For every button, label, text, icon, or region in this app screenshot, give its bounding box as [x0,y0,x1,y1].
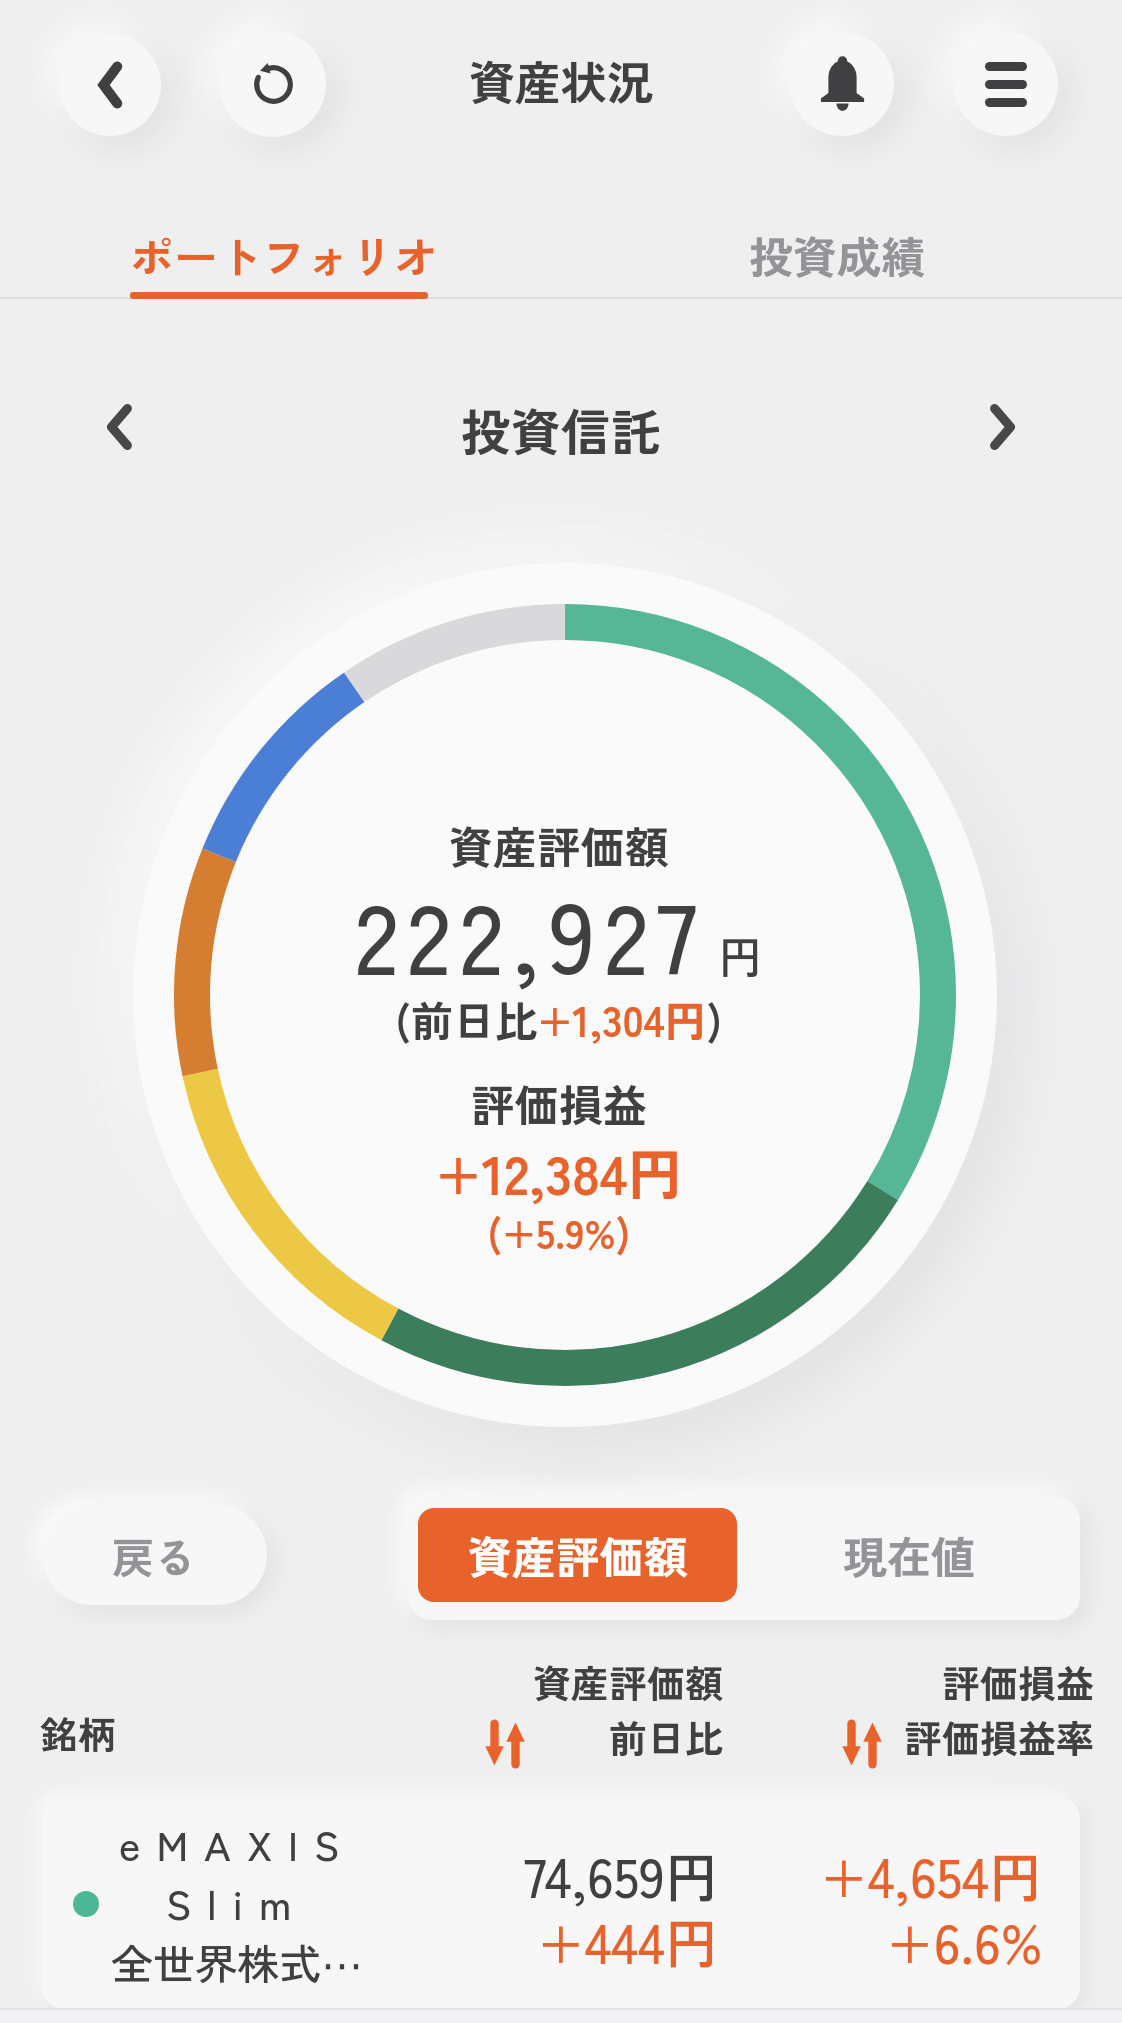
button[interactable] [59,34,161,136]
button[interactable]: ポートフォリオ [130,223,438,287]
button[interactable]: eMAXIS [42,1797,1080,2009]
staticText: 前日比 [609,1709,724,1764]
staticText: +444円 [537,1901,719,1979]
staticText: +12,384円 [435,1131,683,1211]
button[interactable] [220,31,326,137]
staticText: 評価損益 [942,1654,1095,1709]
staticText: 資産評価額 [449,813,669,873]
staticText: ポートフォリオ [130,223,438,287]
staticText: 評価損益 [471,1071,647,1131]
staticText: 222,927 円 [355,861,763,1001]
staticText: 現在値 [843,1523,975,1587]
button[interactable]: 投資成績 [749,223,925,287]
staticText: 評価損益率 [904,1709,1095,1764]
staticText: 74,659円 [524,1835,719,1913]
staticText: 資産状況 [469,47,653,113]
staticText: 資産評価額 [533,1654,724,1709]
staticText: 戻る [112,1525,197,1586]
staticText: (前日比+1,304円) [395,988,723,1048]
staticText: 資産評価額 [468,1523,688,1587]
button[interactable]: 戻る [42,1505,267,1605]
staticText: 全世界株式⋯ [111,1931,364,1992]
staticText: +6.6% [886,1901,1043,1979]
button[interactable] [790,32,894,136]
button[interactable]: 現在値 [749,1508,1068,1602]
staticText: (+5.9%) [487,1203,631,1261]
button[interactable]: 資産評価額 [418,1508,737,1602]
button[interactable] [104,406,134,448]
staticText: 投資成績 [749,223,925,287]
staticText: +4,654円 [820,1835,1043,1913]
staticText: 投資信託 [461,393,661,465]
button[interactable] [988,406,1018,448]
button[interactable] [954,32,1058,136]
staticText: 銘柄 [40,1705,117,1760]
staticText: Slim [166,1872,308,1931]
staticText: eMAXIS [119,1813,356,1872]
